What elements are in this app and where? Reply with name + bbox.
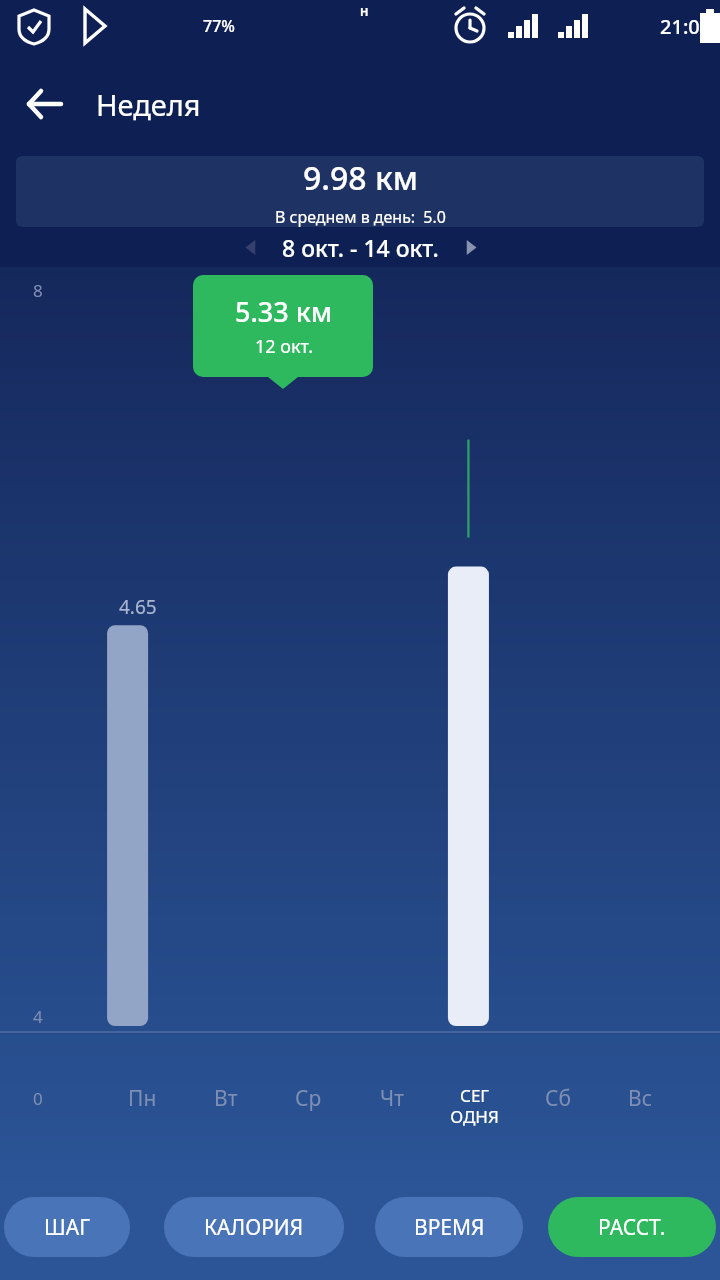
button[interactable]: ВРЕМЯ: [375, 1197, 523, 1257]
staticText: 4: [33, 1005, 43, 1028]
staticText: Сб: [545, 1084, 571, 1113]
button[interactable]: Previous week: [234, 230, 268, 264]
staticText: 12 окт.: [255, 334, 313, 359]
button[interactable]: Next week: [453, 230, 487, 264]
staticText: 4.65: [119, 594, 157, 620]
staticText: ВРЕМЯ: [414, 1213, 485, 1242]
staticText: ШАГ: [44, 1213, 90, 1242]
staticText: Ср: [295, 1084, 322, 1113]
staticText: Вт: [214, 1084, 238, 1113]
button[interactable]: РАССТ.: [548, 1197, 716, 1257]
staticText: 5.33 км: [235, 293, 332, 330]
staticText: Неделя: [96, 85, 201, 124]
button[interactable]: 8 окт. - 14 окт.: [282, 232, 439, 263]
staticText: В среднем в день: 5.0: [275, 206, 446, 227]
staticText: Чт: [380, 1084, 404, 1113]
staticText: КАЛОРИЯ: [204, 1213, 304, 1242]
button[interactable]: 5.33 км: [193, 275, 373, 389]
button[interactable]: ШАГ: [4, 1197, 130, 1257]
button[interactable]: 9.98 км: [16, 156, 704, 227]
staticText: 8: [33, 279, 43, 302]
staticText: РАССТ.: [598, 1213, 666, 1242]
staticText: Пн: [128, 1084, 157, 1113]
button[interactable]: КАЛОРИЯ: [164, 1197, 344, 1257]
staticText: 77%: [203, 15, 235, 37]
staticText: СЕГ ОДНЯ: [450, 1084, 499, 1128]
staticText: Вс: [628, 1084, 653, 1113]
staticText: 0: [33, 1087, 43, 1110]
staticText: 21:07: [660, 13, 712, 40]
staticText: H: [360, 4, 369, 19]
button[interactable]: Back: [14, 74, 74, 134]
staticText: 9.98 км: [303, 156, 418, 200]
